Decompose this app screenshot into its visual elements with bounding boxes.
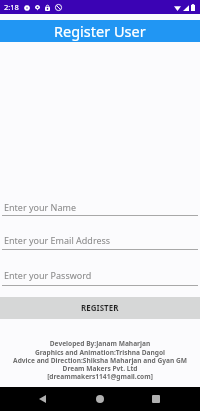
- button[interactable]: Enter your Password: [0, 265, 200, 286]
- staticText: Enter your Email Address: [4, 234, 111, 246]
- staticText: Enter your Name: [4, 201, 76, 213]
- button[interactable]: Back: [34, 391, 50, 407]
- button[interactable]: Register User: [0, 20, 200, 42]
- staticText: Developed By:Janam Maharjan Graphics and…: [0, 339, 200, 381]
- button[interactable]: Home: [92, 391, 108, 407]
- staticText: Enter your Password: [4, 269, 92, 281]
- button[interactable]: REGISTER: [0, 297, 200, 319]
- staticText: REGISTER: [81, 302, 119, 313]
- button[interactable]: Enter your Name: [0, 197, 200, 216]
- staticText: Register User: [54, 21, 146, 41]
- button[interactable]: Enter your Email Address: [0, 230, 200, 250]
- staticText: 2:18: [4, 2, 19, 12]
- button[interactable]: Recents: [148, 391, 164, 407]
